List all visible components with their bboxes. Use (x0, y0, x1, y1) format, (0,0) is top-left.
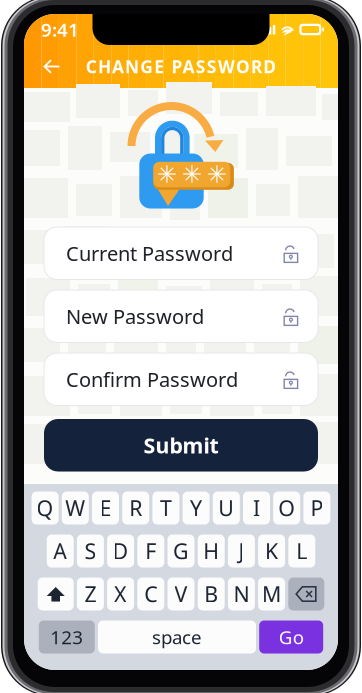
staticText: X (114, 580, 127, 608)
staticText: M (262, 580, 281, 608)
button[interactable]: W (62, 491, 89, 524)
staticText: B (204, 580, 218, 608)
button[interactable]: F (137, 534, 164, 567)
staticText: ✳ (182, 161, 202, 188)
staticText: New Password (66, 303, 204, 330)
button[interactable]: Current Password (44, 227, 318, 279)
staticText: CHANGE PASSWORD (86, 55, 276, 78)
staticText: ✳ (157, 161, 177, 188)
staticText: Q (37, 494, 54, 522)
staticText: 123 (50, 625, 83, 649)
button[interactable]: M (258, 577, 285, 610)
button[interactable]: V (167, 577, 194, 610)
button[interactable]: J (228, 534, 255, 567)
button[interactable]: A (47, 534, 74, 567)
staticText: Z (84, 580, 96, 608)
staticText: O (278, 494, 295, 522)
staticText: Y (190, 494, 202, 522)
staticText: K (265, 537, 278, 565)
staticText: C (144, 580, 157, 608)
button[interactable]: Confirm Password (44, 353, 318, 405)
staticText: N (233, 580, 249, 608)
staticText: ✳ (207, 161, 227, 188)
button[interactable]: Y (183, 491, 210, 524)
button[interactable]: New Password (44, 290, 318, 342)
button[interactable]: Submit (44, 419, 318, 471)
button[interactable]: Back (34, 48, 70, 84)
button[interactable]: Shift (38, 577, 74, 610)
button[interactable]: Z (77, 577, 104, 610)
staticText: S (84, 537, 96, 565)
button[interactable]: H (198, 534, 225, 567)
button[interactable]: L (288, 534, 315, 567)
staticText: I (253, 494, 260, 522)
staticText: D (113, 537, 129, 565)
staticText: 9:41 (41, 17, 79, 42)
button[interactable]: Delete (288, 577, 324, 610)
button[interactable]: T (152, 491, 179, 524)
staticText: V (174, 580, 187, 608)
staticText: F (145, 537, 156, 565)
button[interactable]: X (107, 577, 134, 610)
staticText: T (160, 494, 172, 522)
button[interactable]: 123 (39, 620, 95, 653)
button[interactable]: B (198, 577, 225, 610)
button[interactable]: Go (259, 620, 323, 653)
staticText: L (296, 537, 307, 565)
staticText: H (203, 537, 219, 565)
staticText: A (53, 537, 67, 565)
button[interactable]: U (213, 491, 240, 524)
staticText: Confirm Password (66, 366, 238, 393)
button[interactable]: N (228, 577, 255, 610)
staticText: W (65, 494, 85, 522)
staticText: G (173, 537, 189, 565)
staticText: E (99, 494, 111, 522)
button[interactable]: E (92, 491, 119, 524)
button[interactable]: S (77, 534, 104, 567)
button[interactable]: D (107, 534, 134, 567)
staticText: U (218, 494, 234, 522)
button[interactable]: R (122, 491, 149, 524)
staticText: space (152, 625, 202, 649)
staticText: Current Password (66, 240, 233, 267)
staticText: P (310, 494, 323, 522)
button[interactable]: O (273, 491, 300, 524)
staticText: Go (279, 625, 304, 649)
staticText: Submit (143, 431, 218, 459)
button[interactable]: C (137, 577, 164, 610)
staticText: J (238, 537, 244, 565)
button[interactable]: space (98, 620, 256, 653)
button[interactable]: K (258, 534, 285, 567)
staticText: R (129, 494, 142, 522)
button[interactable]: I (243, 491, 270, 524)
button[interactable]: G (167, 534, 194, 567)
button[interactable]: P (303, 491, 330, 524)
button[interactable]: Q (32, 491, 59, 524)
